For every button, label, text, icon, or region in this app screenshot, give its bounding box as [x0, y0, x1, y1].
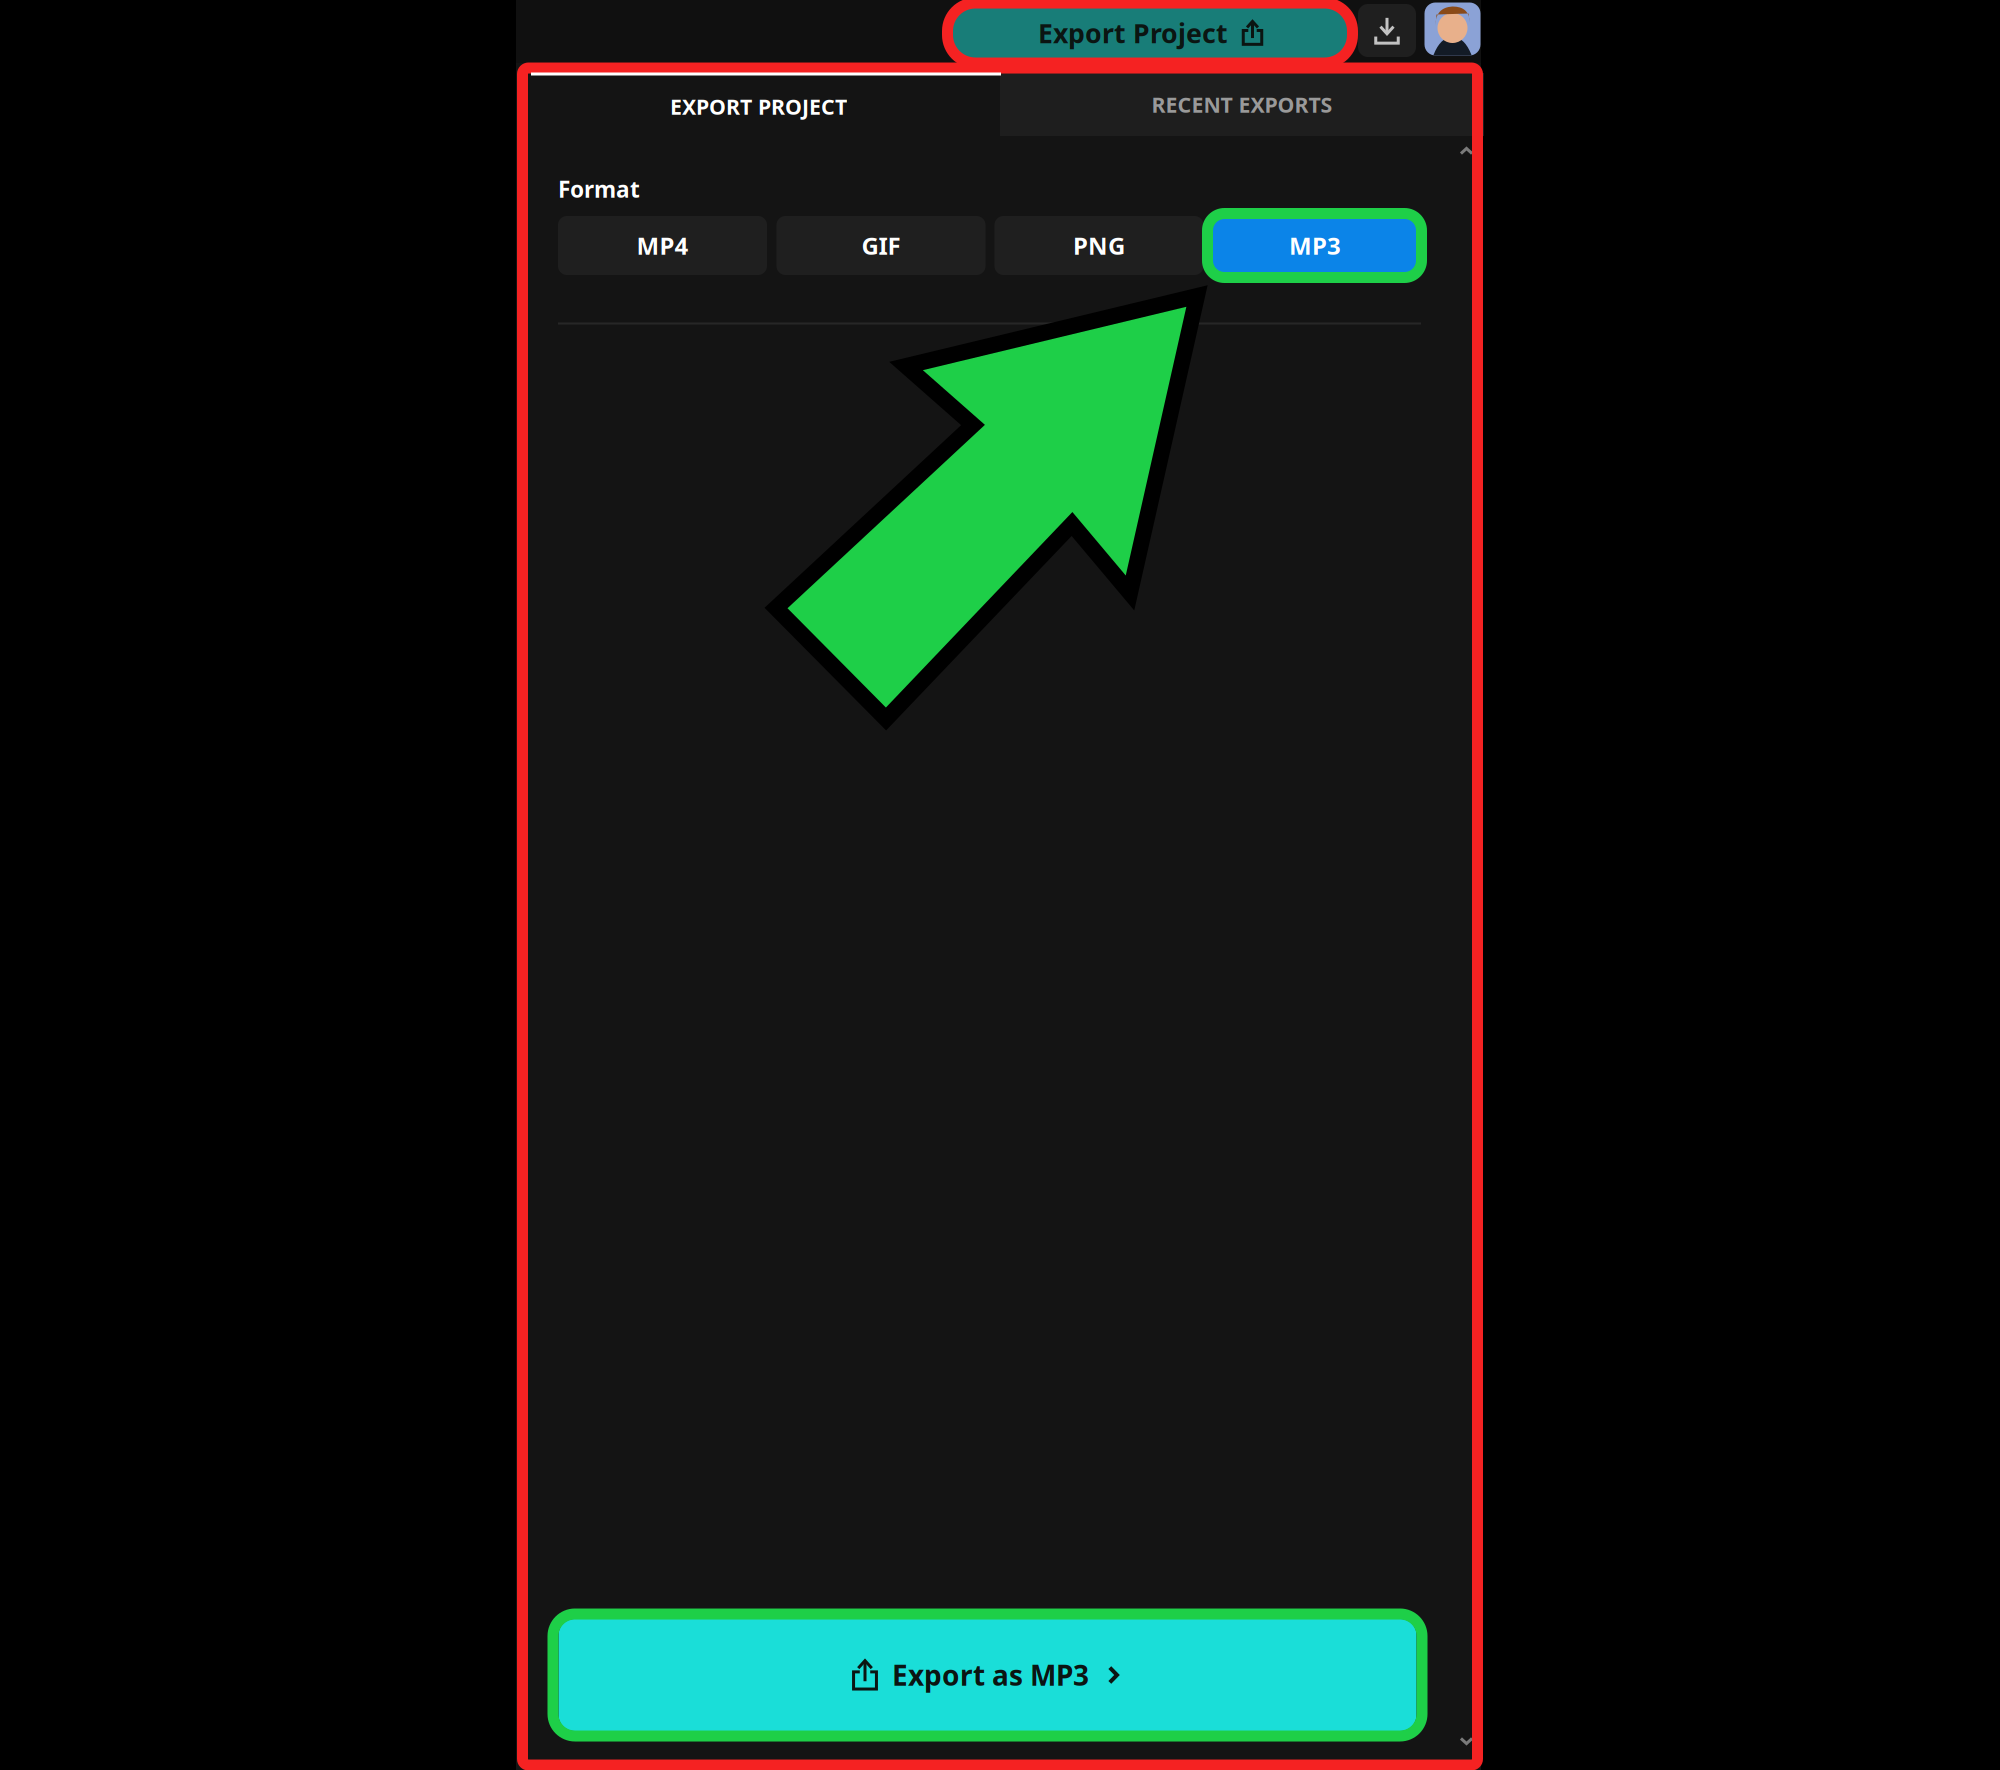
button[interactable]: Account — [1424, 2, 1480, 55]
staticText: MP4 — [636, 230, 688, 261]
staticText: RECENT EXPORTS — [1151, 90, 1332, 119]
staticText: Format — [558, 174, 640, 204]
staticText: PNG — [1073, 230, 1125, 261]
staticText: Export as MP3 — [892, 1656, 1089, 1694]
button[interactable]: Export Project — [953, 8, 1348, 58]
staticText: MP3 — [1289, 230, 1341, 261]
staticText: EXPORT PROJECT — [670, 92, 847, 121]
staticText: Export Project — [1038, 15, 1228, 51]
button[interactable]: MP4 — [558, 216, 767, 275]
button[interactable]: MP3 — [1212, 218, 1417, 272]
button[interactable]: EXPORT PROJECT — [516, 75, 1001, 138]
button[interactable]: Export as MP3 — [558, 1619, 1416, 1731]
button[interactable]: PNG — [994, 216, 1203, 275]
staticText: GIF — [861, 230, 900, 261]
button[interactable]: Download — [1358, 4, 1416, 57]
button[interactable]: GIF — [776, 216, 985, 275]
button[interactable]: RECENT EXPORTS — [1000, 73, 1484, 136]
